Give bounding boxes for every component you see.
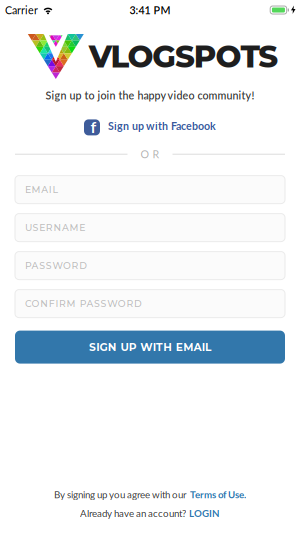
staticText: O R <box>140 148 159 161</box>
staticText: Already have an account? <box>80 507 186 519</box>
button[interactable]: Terms of Use. <box>190 489 246 500</box>
staticText: SIGN UP WITH EMAIL <box>89 341 211 354</box>
staticText: USERNAME <box>25 222 85 233</box>
staticText: USERNAME <box>25 222 81 233</box>
textField[interactable]: USERNAME <box>25 222 285 233</box>
staticText: CONFIRM PASSWORD <box>25 298 142 309</box>
staticText: Carrier <box>5 4 38 16</box>
textField[interactable]: CONFIRM PASSWORD <box>25 298 285 309</box>
staticText: LOGIN <box>189 507 220 519</box>
staticText: Sign up with Facebook <box>108 119 216 132</box>
staticText: Terms of Use. <box>190 489 246 500</box>
staticText: PASSWORD <box>25 260 83 271</box>
staticText: By signing up you agree with our <box>54 489 187 500</box>
textField[interactable]: EMAIL <box>25 184 285 195</box>
staticText: 3:41 PM <box>129 4 170 16</box>
staticText: EMAIL <box>25 184 56 195</box>
staticText: f <box>90 117 96 136</box>
button[interactable]: SIGN UP WITH EMAIL <box>15 331 285 364</box>
button[interactable]: LOGIN <box>189 507 220 519</box>
textField[interactable]: PASSWORD <box>25 260 285 271</box>
button[interactable]: f <box>84 118 216 134</box>
staticText: EMAIL <box>25 184 58 195</box>
staticText: VLOGSPOTS <box>89 38 278 75</box>
staticText: Sign up to join the happy video communit… <box>45 89 254 102</box>
staticText: PASSWORD <box>25 260 87 271</box>
staticText: CONFIRM PASSWORD <box>25 298 133 309</box>
